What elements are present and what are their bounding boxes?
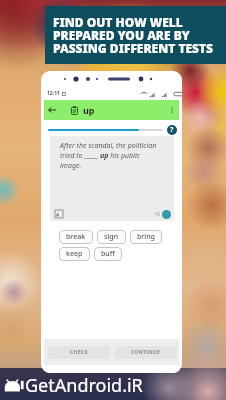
- button[interactable]: Hint: [162, 210, 171, 219]
- staticText: sign: [104, 232, 119, 242]
- button[interactable]: Help: [167, 125, 177, 135]
- button[interactable]: buff: [94, 247, 122, 261]
- staticText: FIND OUT HOW WELL PREPARED YOU ARE BY PA…: [53, 14, 213, 56]
- button[interactable]: More options: [167, 105, 177, 115]
- staticText: After the scandal, the politician tried …: [60, 141, 158, 171]
- button[interactable]: keep: [59, 247, 90, 261]
- button[interactable]: sign: [97, 230, 126, 244]
- button[interactable]: bring: [130, 230, 162, 244]
- staticText: ?: [170, 125, 174, 135]
- staticText: CONTINUE: [131, 349, 161, 356]
- staticText: +0: [154, 211, 160, 218]
- staticText: keep: [66, 249, 83, 259]
- staticText: 12:11: [47, 90, 60, 97]
- button[interactable]: CONTINUE: [115, 346, 177, 359]
- staticText: up: [83, 104, 95, 116]
- staticText: GetAndroid.iR: [25, 373, 143, 398]
- staticText: bring: [137, 232, 155, 242]
- button[interactable]: break: [59, 230, 93, 244]
- button[interactable]: CHECK: [48, 346, 110, 359]
- staticText: break: [66, 232, 86, 242]
- staticText: buff: [101, 249, 115, 259]
- staticText: CHECK: [70, 349, 88, 356]
- button[interactable]: Back: [45, 103, 59, 117]
